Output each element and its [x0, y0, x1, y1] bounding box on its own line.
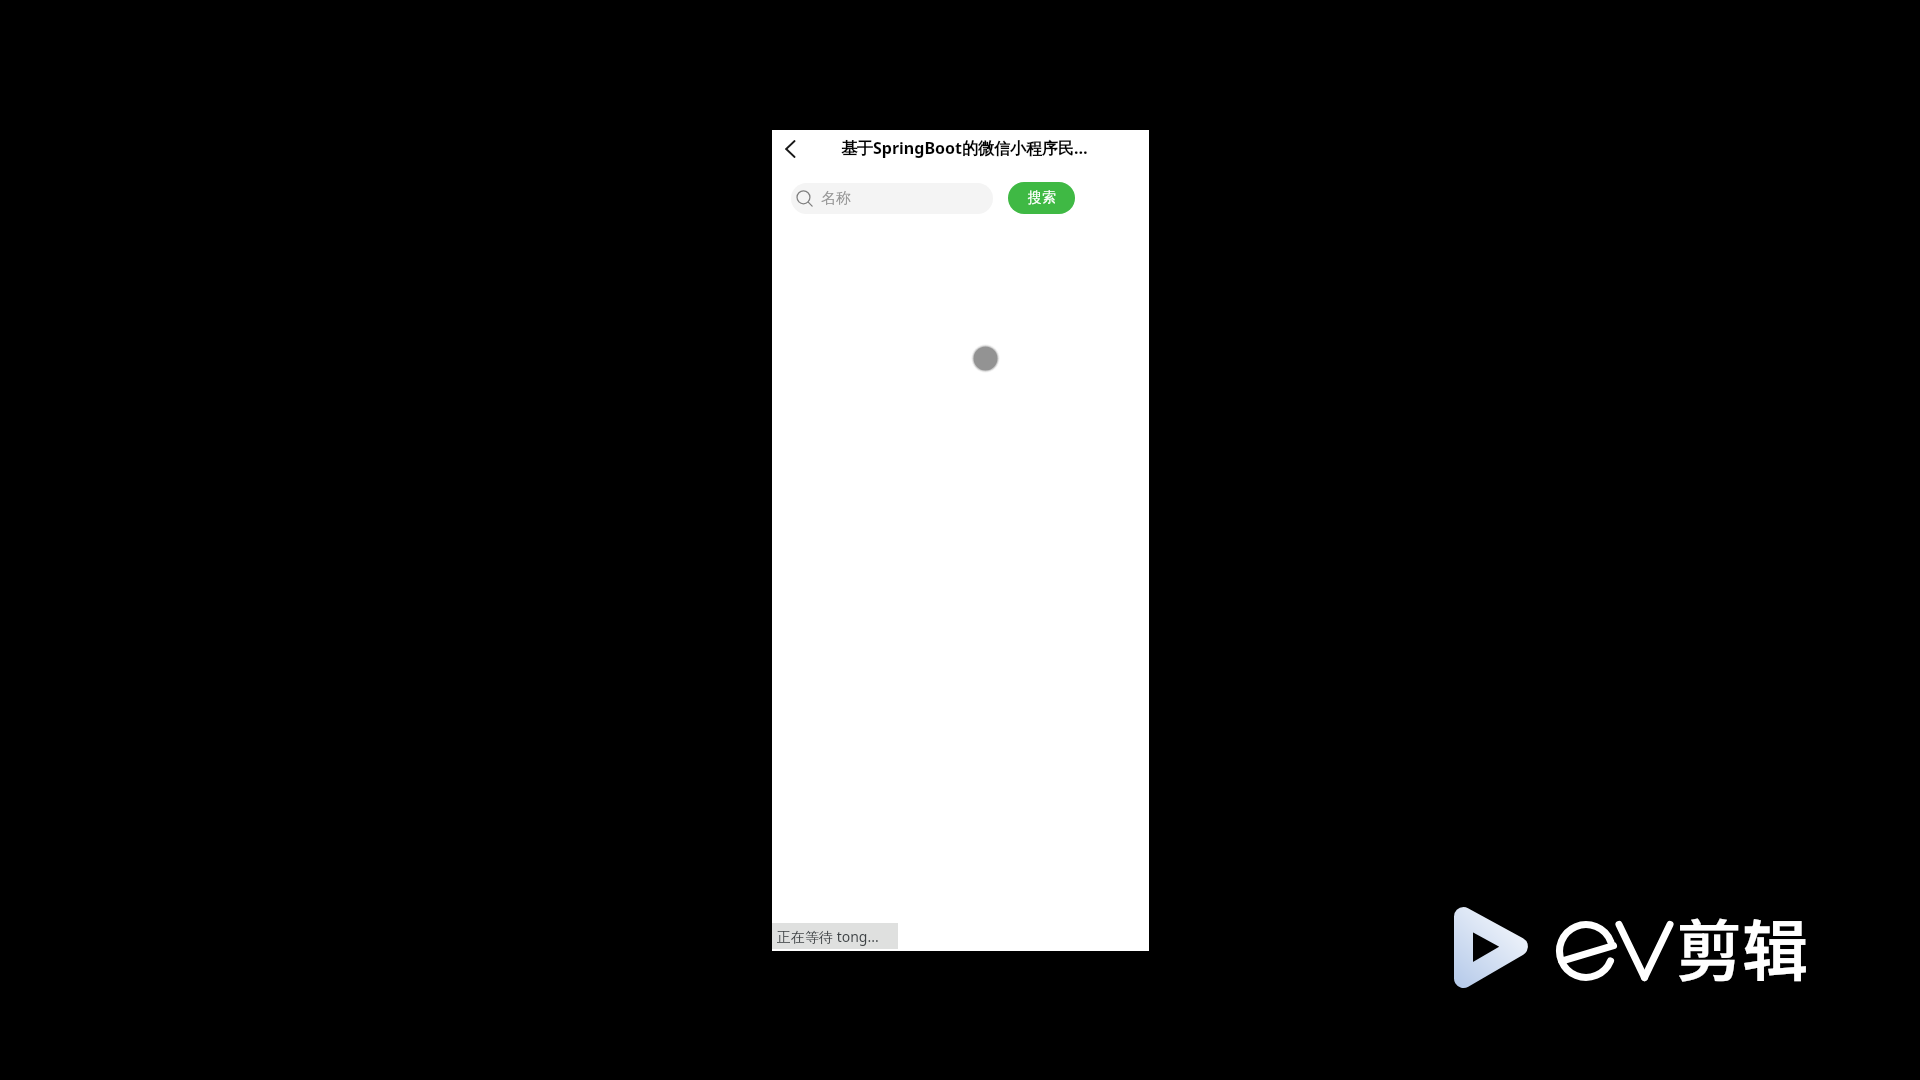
other: ev logo: [1452, 905, 1532, 993]
button[interactable]: 名称: [791, 183, 993, 214]
staticText: 正在等待 tong...: [777, 927, 879, 946]
other: ev: [1556, 921, 1670, 981]
button[interactable]: Back: [774, 133, 806, 165]
button[interactable]: 搜索: [1008, 182, 1075, 214]
staticText: 搜索: [1028, 189, 1056, 207]
staticText: 基于SpringBoot的微信小程序民…: [841, 137, 1088, 159]
other: Loading: [971, 344, 1000, 373]
staticText: 名称: [821, 189, 851, 208]
staticText: 剪辑: [1676, 898, 1808, 994]
